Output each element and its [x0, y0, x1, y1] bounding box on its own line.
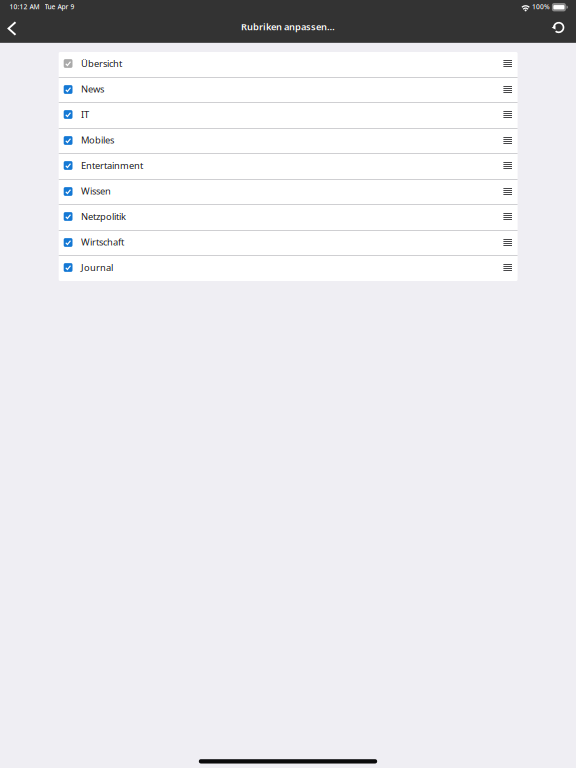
button[interactable]: Netzpolitik [59, 205, 518, 230]
staticText: Wissen [81, 185, 111, 197]
staticText: Wirtschaft [81, 236, 124, 248]
staticText: Übersicht [81, 57, 122, 69]
staticText: IT [81, 108, 89, 120]
button[interactable]: News [59, 78, 518, 102]
staticText: News [81, 83, 104, 95]
button[interactable]: Wirtschaft [59, 231, 518, 255]
staticText: Mobiles [81, 134, 114, 146]
staticText: Netzpolitik [81, 210, 126, 222]
button[interactable]: Übersicht [59, 52, 518, 77]
button[interactable]: Reset [546, 15, 570, 41]
button[interactable]: Wissen [59, 180, 518, 204]
staticText: Rubriken anpassen… [241, 20, 335, 33]
button[interactable]: Journal [59, 256, 518, 281]
staticText: 10:12 AM [10, 2, 40, 11]
staticText: 100% [532, 2, 550, 11]
staticText: Journal [81, 261, 113, 273]
button[interactable]: Mobiles [59, 129, 518, 153]
button[interactable]: IT [59, 103, 518, 128]
staticText: Entertainment [81, 159, 143, 171]
button[interactable]: Back [1, 15, 23, 41]
button[interactable]: Entertainment [59, 154, 518, 179]
staticText: Tue Apr 9 [45, 2, 75, 11]
